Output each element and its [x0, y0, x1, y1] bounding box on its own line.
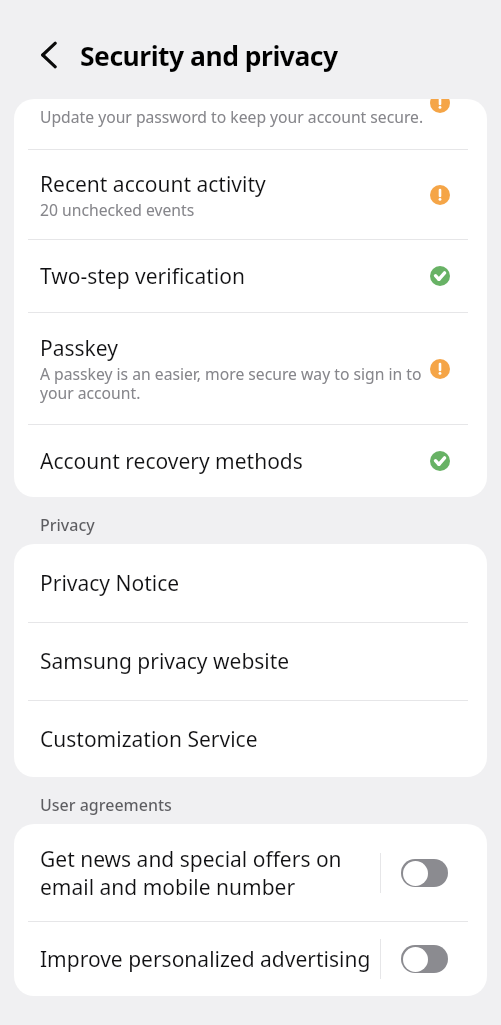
button[interactable]: Toggle Get news and special offers on em…	[381, 824, 487, 921]
staticText: Improve personalized advertising	[40, 945, 378, 974]
staticText: Account recovery methods	[40, 447, 303, 476]
other: Secure	[430, 451, 450, 471]
staticText: Update your password to keep your accoun…	[40, 106, 424, 127]
staticText: Get news and special offers on email and…	[40, 845, 378, 901]
other: Action needed	[430, 359, 450, 379]
other: Action needed	[430, 99, 450, 113]
staticText: Security and privacy	[80, 38, 338, 74]
button[interactable]: Account recovery methods	[14, 425, 487, 497]
staticText: 20 unchecked events	[40, 199, 195, 220]
button[interactable]: Improve personalized advertising	[14, 922, 487, 996]
button[interactable]: Samsung privacy website	[14, 623, 487, 700]
button[interactable]: Customization Service	[14, 701, 487, 777]
staticText: Two-step verification	[40, 262, 245, 291]
other: Secure	[430, 266, 450, 286]
button[interactable]: Toggle Improve personalized advertising	[381, 922, 487, 996]
button[interactable]: Passkey	[14, 313, 487, 424]
staticText: Passkey	[40, 334, 118, 363]
staticText: User agreements	[40, 794, 172, 816]
staticText: Recent account activity	[40, 170, 266, 199]
button[interactable]: Navigate up	[32, 39, 64, 71]
button[interactable]: Recent account activity	[14, 150, 487, 239]
staticText: Privacy Notice	[40, 569, 180, 598]
staticText: Customization Service	[40, 725, 258, 754]
other: Action needed	[430, 185, 450, 205]
button[interactable]: Update your password to keep your accoun…	[14, 99, 487, 149]
button[interactable]: Two-step verification	[14, 240, 487, 312]
staticText: Privacy	[40, 514, 95, 536]
staticText: Samsung privacy website	[40, 647, 290, 676]
button[interactable]: Get news and special offers on email and…	[14, 824, 487, 921]
staticText: A passkey is an easier, more secure way …	[40, 363, 422, 404]
button[interactable]: Privacy Notice	[14, 544, 487, 622]
